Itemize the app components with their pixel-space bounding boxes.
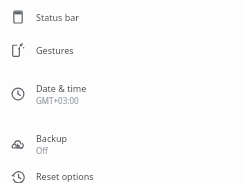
staticText: GMT+03:00	[36, 95, 79, 106]
staticText: Status bar	[36, 11, 80, 23]
staticText: Backup	[36, 132, 68, 144]
other: Status bar	[0, 1, 36, 33]
staticText: Date & time	[36, 82, 87, 94]
button[interactable]: Backup	[0, 120, 245, 168]
button[interactable]: Gestures	[0, 34, 245, 66]
other: Reset options	[0, 170, 36, 183]
button[interactable]: Date and time	[0, 70, 245, 118]
button[interactable]: Status bar	[0, 1, 245, 33]
staticText: Off	[36, 145, 48, 156]
staticText: Gestures	[36, 44, 74, 56]
staticText: Reset options	[36, 170, 94, 182]
other: Gestures	[0, 34, 36, 66]
other: Backup	[0, 120, 36, 168]
other: Date and time	[0, 70, 36, 118]
button[interactable]: Reset options	[0, 170, 245, 183]
